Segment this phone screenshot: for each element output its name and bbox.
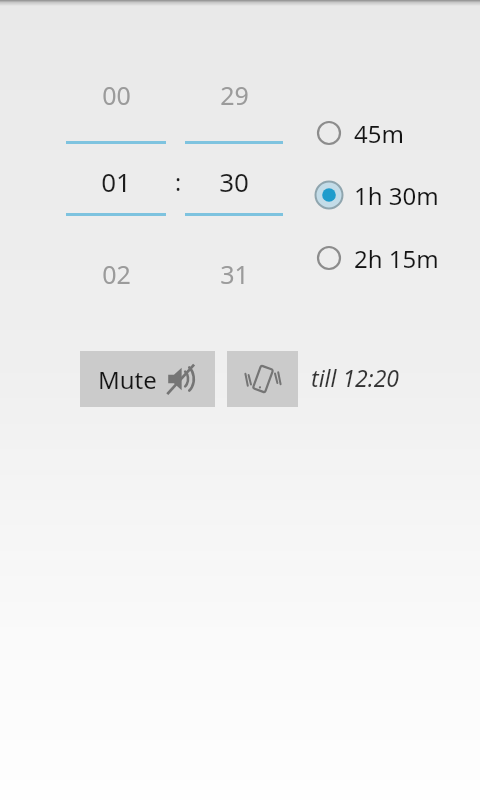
staticText: 1h 30m	[354, 179, 439, 212]
staticText: Mute	[98, 363, 157, 396]
staticText: 31	[220, 257, 249, 291]
button[interactable]: 30	[185, 163, 283, 199]
staticText: till 12:20	[311, 362, 399, 393]
button[interactable]: Mute	[80, 351, 215, 407]
staticText: 2h 15m	[354, 242, 439, 275]
button[interactable]: 2h 15m	[313, 236, 473, 280]
button[interactable]: Vibrate	[227, 351, 298, 407]
staticText: 01	[101, 164, 131, 199]
staticText: 29	[220, 78, 249, 112]
staticText: 02	[102, 257, 131, 291]
staticText: :	[175, 166, 182, 197]
staticText: 30	[219, 164, 249, 199]
staticText: 45m	[354, 117, 404, 150]
button[interactable]: 01	[66, 163, 166, 199]
staticText: 00	[102, 78, 131, 112]
button[interactable]: 45m	[313, 111, 473, 155]
button[interactable]: 1h 30m	[313, 173, 473, 217]
